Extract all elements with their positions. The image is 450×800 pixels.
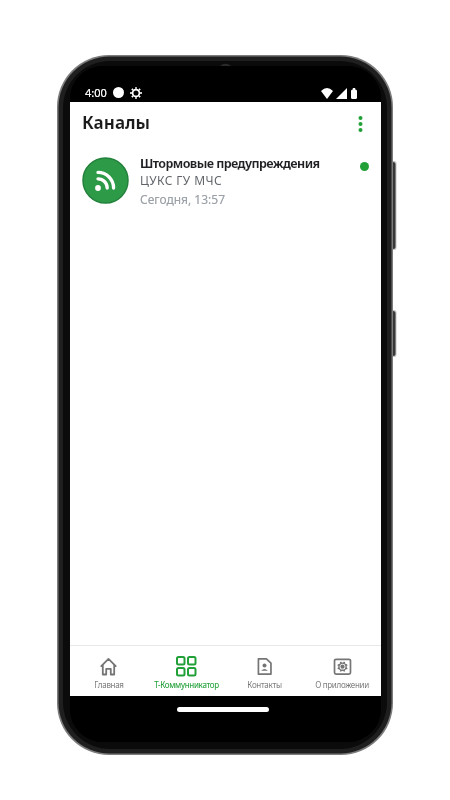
button[interactable]: О приложении <box>303 646 381 696</box>
button[interactable]: Контакты <box>225 646 303 696</box>
staticText: Контакты <box>247 679 282 690</box>
staticText: О приложении <box>315 679 369 690</box>
staticText: Штормовые предупреждения <box>140 155 320 172</box>
button[interactable]: Штормовые предупреждения <box>70 146 381 218</box>
staticText: Т-Коммунникатор <box>154 679 219 690</box>
staticText: 4:00 <box>85 85 107 100</box>
staticText: Каналы <box>82 111 151 134</box>
button[interactable]: Главная <box>70 646 147 696</box>
staticText: Главная <box>94 679 124 690</box>
button[interactable]: Т-Коммунникатор <box>147 646 225 696</box>
staticText: Сегодня, 13:57 <box>140 191 226 207</box>
staticText: ЦУКС ГУ МЧС <box>140 172 222 188</box>
button[interactable] <box>351 115 369 133</box>
